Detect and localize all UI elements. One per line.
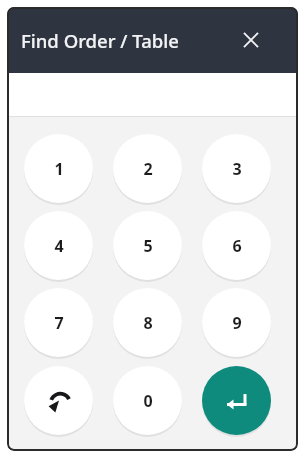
button[interactable]: 1: [24, 134, 93, 203]
staticText: 5: [143, 235, 153, 257]
button[interactable]: Close: [234, 23, 268, 57]
button[interactable]: [7, 73, 298, 117]
button[interactable]: Enter: [202, 366, 271, 435]
button[interactable]: 0: [113, 366, 182, 435]
button[interactable]: 7: [24, 288, 93, 357]
staticText: Find Order / Table: [21, 28, 179, 53]
button[interactable]: 8: [113, 288, 182, 357]
staticText: 0: [143, 390, 153, 412]
button[interactable]: 6: [202, 211, 271, 280]
button[interactable]: Backspace: [24, 366, 93, 435]
button[interactable]: 4: [24, 211, 93, 280]
button[interactable]: 3: [202, 134, 271, 203]
staticText: 9: [232, 312, 242, 334]
staticText: 7: [54, 312, 64, 334]
button[interactable]: 5: [113, 211, 182, 280]
button[interactable]: 2: [113, 134, 182, 203]
staticText: 3: [232, 158, 242, 180]
button[interactable]: 9: [202, 288, 271, 357]
staticText: 4: [54, 235, 64, 257]
staticText: 1: [54, 158, 64, 180]
staticText: 6: [232, 235, 242, 257]
staticText: 2: [143, 158, 153, 180]
staticText: 8: [143, 312, 153, 334]
